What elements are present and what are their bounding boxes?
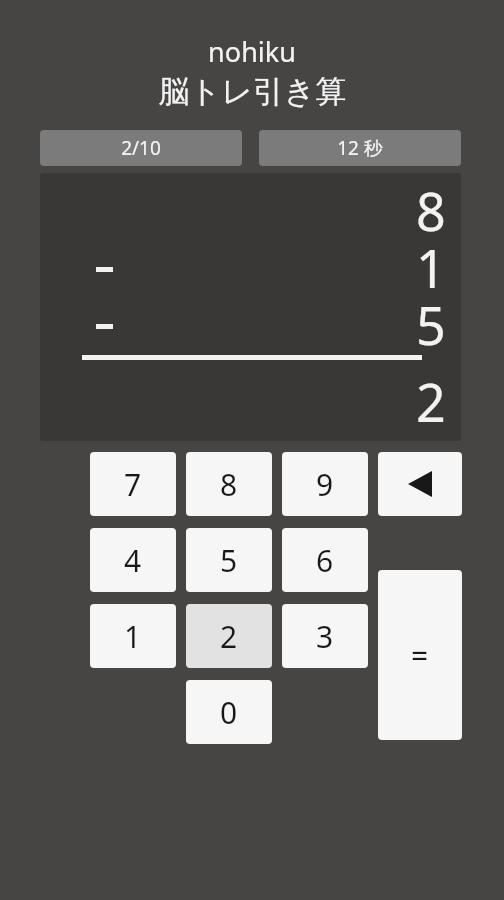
button[interactable]: 4 xyxy=(90,528,176,592)
button[interactable]: 12 秒 xyxy=(259,130,461,166)
staticText: 2 xyxy=(416,366,446,437)
button[interactable]: 1 xyxy=(90,604,176,668)
staticText: 脳トレ引き算 xyxy=(158,72,347,111)
button[interactable]: 5 xyxy=(186,528,272,592)
staticText: nohiku xyxy=(208,33,296,70)
staticText: 4 xyxy=(124,540,142,581)
button[interactable]: 0 xyxy=(186,680,272,744)
staticText: 6 xyxy=(316,540,334,581)
staticText: 8 xyxy=(220,464,238,505)
button[interactable]: 6 xyxy=(282,528,368,592)
staticText: 8 xyxy=(416,175,446,246)
staticText: 1 xyxy=(124,616,142,657)
button[interactable]: 8 xyxy=(186,452,272,516)
staticText: 9 xyxy=(316,464,334,505)
staticText: 2 xyxy=(220,616,238,657)
button[interactable]: Backspace xyxy=(378,452,462,516)
staticText: 12 秒 xyxy=(337,135,383,161)
button[interactable]: Equals xyxy=(378,570,462,740)
staticText: 5 xyxy=(220,540,238,581)
button[interactable]: 7 xyxy=(90,452,176,516)
staticText: = xyxy=(411,635,429,676)
staticText: 0 xyxy=(220,692,238,733)
staticText: 3 xyxy=(316,616,334,657)
button[interactable]: 3 xyxy=(282,604,368,668)
staticText: 2/10 xyxy=(121,135,161,161)
staticText: 5 xyxy=(416,289,446,360)
button[interactable]: 9 xyxy=(282,452,368,516)
button[interactable]: 2 xyxy=(186,604,272,668)
staticText: 1 xyxy=(416,232,446,303)
button[interactable]: 2/10 xyxy=(40,130,242,166)
staticText: 7 xyxy=(124,464,142,505)
